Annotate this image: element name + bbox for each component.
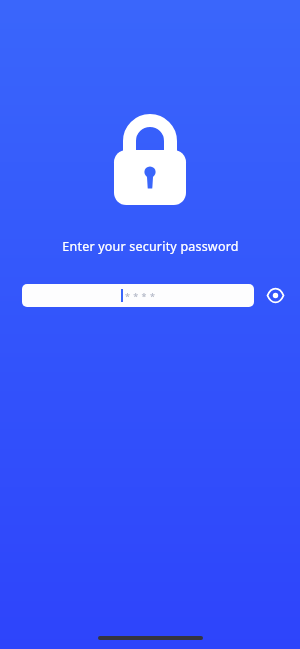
staticText: * * * *: [125, 290, 156, 302]
button[interactable]: Show password: [261, 281, 289, 309]
button[interactable]: * * * *: [22, 284, 254, 307]
staticText: Enter your security password: [62, 238, 239, 255]
other: Locked: [108, 110, 192, 210]
